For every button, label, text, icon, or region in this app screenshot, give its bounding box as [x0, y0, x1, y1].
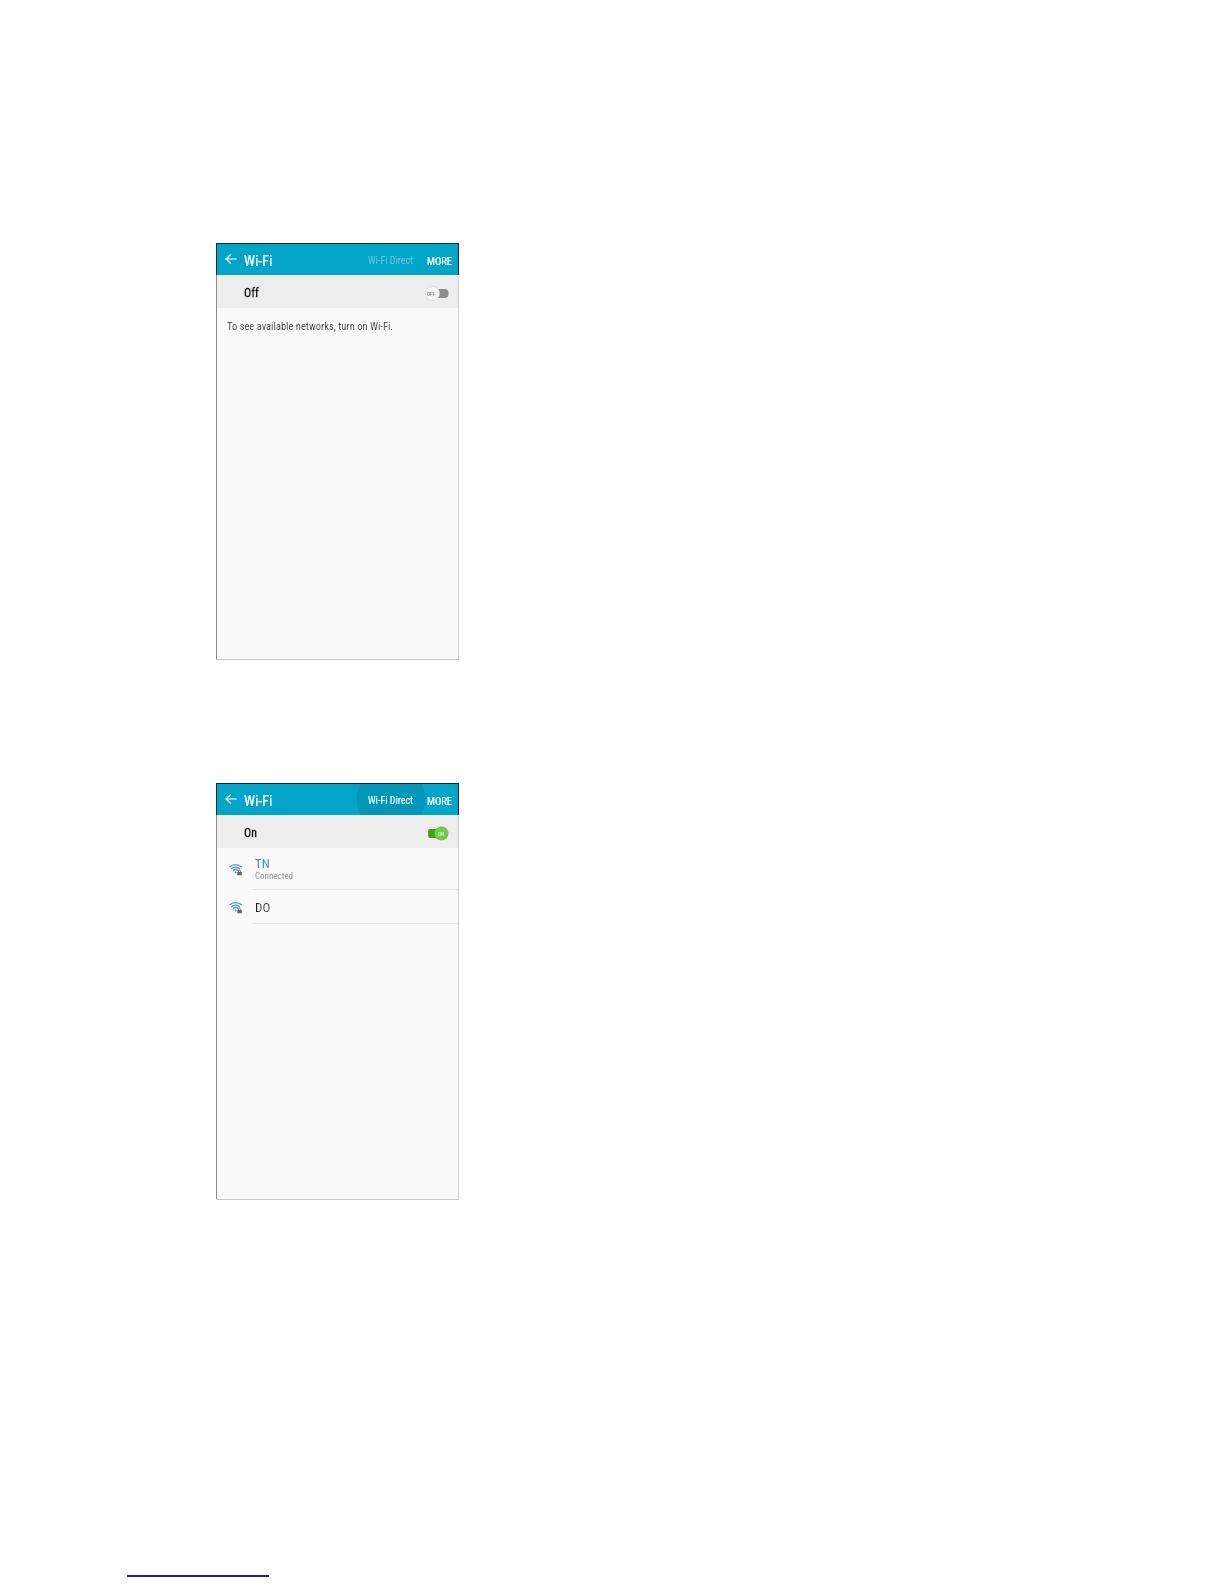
- staticText: Wi-Fi Direct: [368, 795, 414, 807]
- button[interactable]: TN: [216, 848, 459, 890]
- staticText: Wi-Fi: [244, 253, 273, 270]
- staticText: ON: [438, 831, 445, 837]
- button[interactable]: Off: [216, 275, 459, 308]
- button[interactable]: MORE: [427, 785, 453, 815]
- button[interactable]: DO: [216, 890, 459, 924]
- staticText: On: [244, 826, 258, 840]
- button[interactable]: Back: [221, 243, 241, 275]
- staticText: Connected: [255, 871, 294, 882]
- staticText: Wi-Fi: [244, 793, 273, 810]
- staticText: Off: [244, 286, 259, 300]
- button[interactable]: Turn off Wi-Fi: [427, 826, 449, 841]
- staticText: DO: [255, 900, 271, 915]
- button[interactable]: Wi-Fi Direct: [368, 785, 414, 815]
- staticText: To see available networks, turn on Wi-Fi…: [227, 320, 394, 332]
- staticText: MORE: [427, 795, 453, 807]
- button[interactable]: Wi-Fi Direct: [368, 245, 414, 275]
- button[interactable]: Back: [221, 783, 241, 815]
- button[interactable]: MORE: [427, 245, 453, 275]
- staticText: MORE: [427, 255, 453, 267]
- staticText: TN: [255, 856, 270, 871]
- staticText: OFF: [427, 291, 436, 297]
- button[interactable]: On: [216, 815, 459, 848]
- button[interactable]: Turn on Wi-Fi: [425, 286, 449, 301]
- staticText: Wi-Fi Direct: [368, 255, 414, 267]
